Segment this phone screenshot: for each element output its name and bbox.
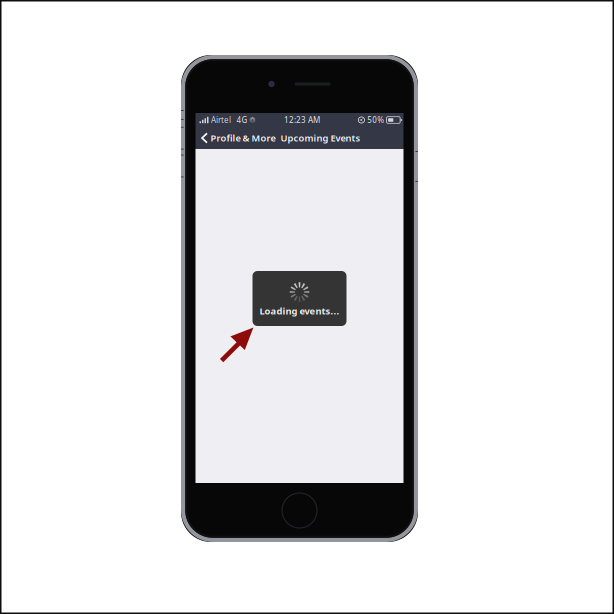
staticText: 12:23 AM: [284, 115, 320, 125]
staticText: Upcoming Events: [281, 132, 361, 144]
button[interactable]: Profile & More: [195, 127, 277, 149]
staticText: Loading events...: [259, 305, 339, 317]
staticText: 50%: [367, 115, 384, 125]
staticText: 4G: [236, 115, 247, 125]
staticText: Profile & More: [211, 132, 276, 144]
staticText: Airtel: [211, 115, 231, 125]
